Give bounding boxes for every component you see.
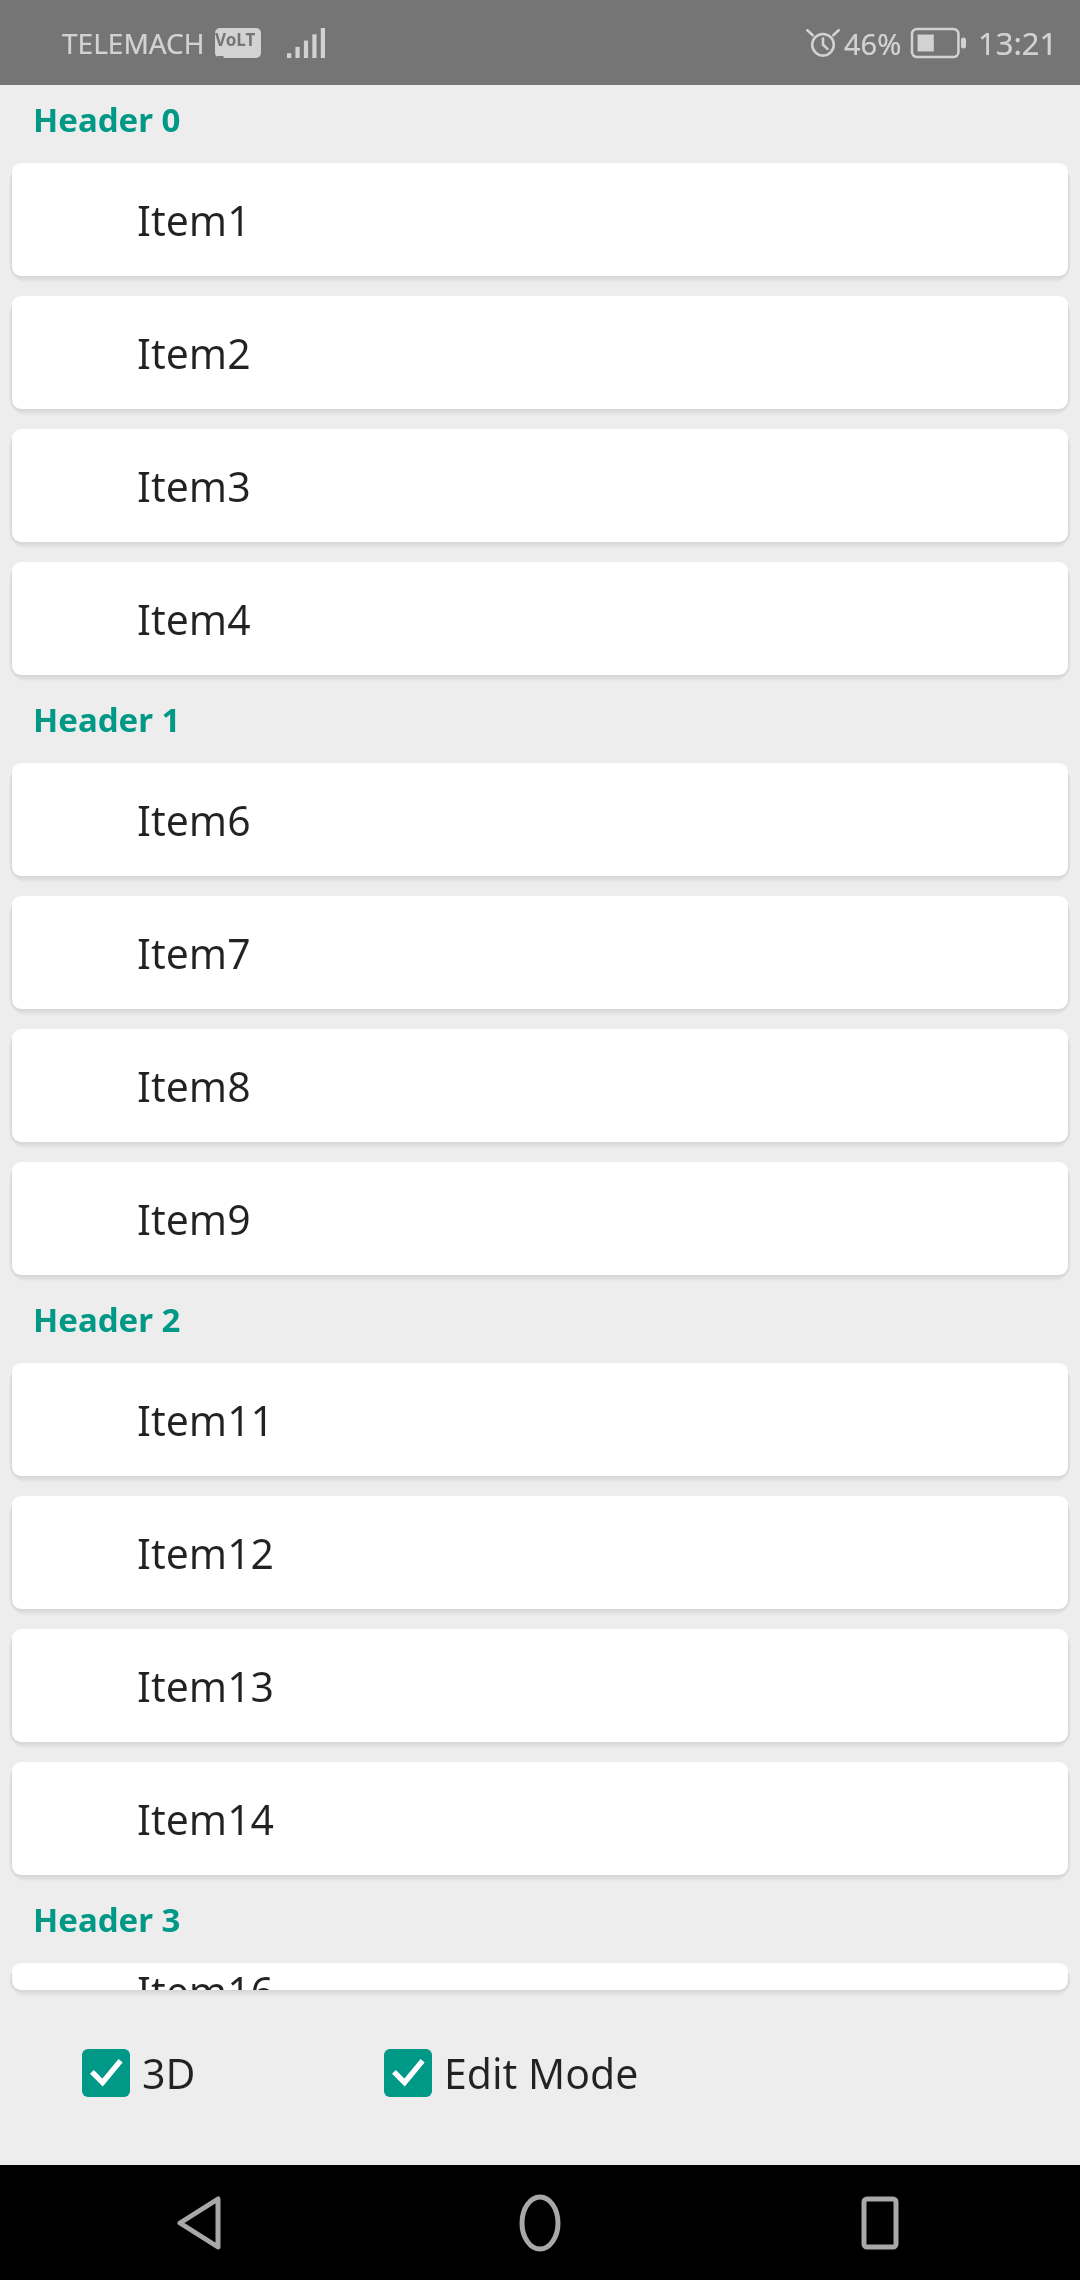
button[interactable]: Item7	[12, 896, 1068, 1009]
button[interactable]: Item14	[12, 1762, 1068, 1875]
staticText: Item7	[137, 925, 251, 981]
staticText: Header 1	[33, 697, 181, 742]
button[interactable]: Item3	[12, 429, 1068, 542]
staticText: VoLTE	[215, 28, 261, 58]
staticText: 13:21	[978, 22, 1058, 64]
button[interactable]: Recent apps	[830, 2173, 930, 2273]
staticText: Item6	[137, 792, 251, 848]
staticText: Item13	[137, 1658, 275, 1714]
button[interactable]: Back	[150, 2173, 250, 2273]
staticText: Edit Mode	[444, 2045, 639, 2101]
button[interactable]: Item4	[12, 562, 1068, 675]
staticText: Header 0	[33, 97, 181, 142]
button[interactable]: 3D	[82, 2045, 196, 2101]
staticText: Item1	[137, 192, 251, 248]
staticText: Header 2	[33, 1297, 181, 1342]
staticText: Item14	[137, 1791, 275, 1847]
staticText: 46%	[844, 24, 902, 63]
button[interactable]: Item6	[12, 763, 1068, 876]
button[interactable]: Item16	[12, 1963, 1068, 1990]
button[interactable]: Item12	[12, 1496, 1068, 1609]
staticText: TELEMACH	[62, 24, 205, 62]
staticText: Item12	[137, 1525, 275, 1581]
staticText: Item9	[137, 1191, 251, 1247]
button[interactable]: Item11	[12, 1363, 1068, 1476]
staticText: Item11	[137, 1392, 275, 1448]
staticText: Item4	[137, 591, 251, 647]
staticText: Item2	[137, 325, 251, 381]
button[interactable]: Item1	[12, 163, 1068, 276]
staticText: Item3	[137, 458, 251, 514]
button[interactable]: Edit Mode	[384, 2045, 639, 2101]
staticText: Header 3	[33, 1897, 181, 1942]
button[interactable]: Item2	[12, 296, 1068, 409]
staticText: Item16	[137, 1963, 275, 1990]
button[interactable]: Home	[490, 2173, 590, 2273]
staticText: Item8	[137, 1058, 251, 1114]
staticText: 3D	[142, 2045, 196, 2101]
button[interactable]: Item9	[12, 1162, 1068, 1275]
button[interactable]: Item8	[12, 1029, 1068, 1142]
button[interactable]: Item13	[12, 1629, 1068, 1742]
